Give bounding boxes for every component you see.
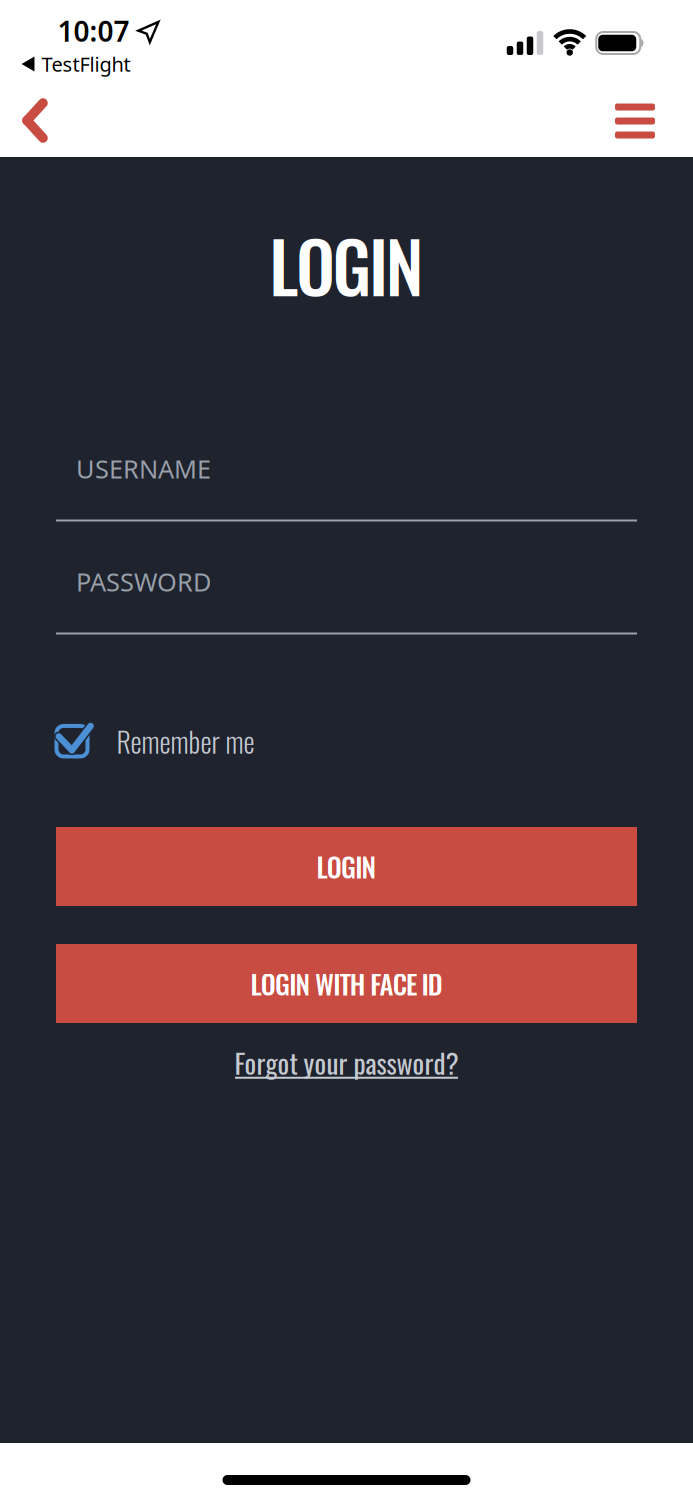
button[interactable]: Forgot your password? <box>234 1042 458 1079</box>
staticText: PASSWORD <box>76 564 211 599</box>
button[interactable]: LOGIN WITH FACE ID <box>56 944 637 1023</box>
staticText: LOGIN WITH FACE ID <box>250 964 443 1003</box>
staticText: 10:07 <box>57 12 129 50</box>
button[interactable]: TestFlight <box>21 50 130 78</box>
staticText: Forgot your password? <box>234 1042 458 1083</box>
button[interactable]: Back <box>16 88 70 153</box>
button[interactable]: LOGIN <box>56 827 637 906</box>
staticText: LOGIN <box>269 214 424 316</box>
staticText: TestFlight <box>41 50 130 78</box>
staticText: USERNAME <box>76 451 211 486</box>
button[interactable]: Remember me <box>53 720 254 762</box>
button[interactable]: Menu <box>609 97 661 144</box>
staticText: LOGIN <box>316 847 376 886</box>
staticText: Remember me <box>116 720 254 762</box>
